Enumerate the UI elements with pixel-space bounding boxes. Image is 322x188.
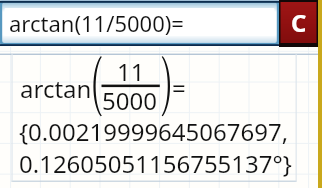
staticText: = [172,71,186,104]
staticText: C [291,6,307,39]
button[interactable]: Clear [279,0,318,47]
staticText: arctan [20,72,92,105]
staticText: {0.00219999645067697, [19,115,289,148]
staticText: 5000 [102,84,157,117]
button[interactable]: arctan(11/5000)= [0,0,279,46]
staticText: arctan(11/5000)= [9,8,184,38]
staticText: 11 [117,55,145,88]
staticText: 0.12605051156755137°} [19,147,292,180]
